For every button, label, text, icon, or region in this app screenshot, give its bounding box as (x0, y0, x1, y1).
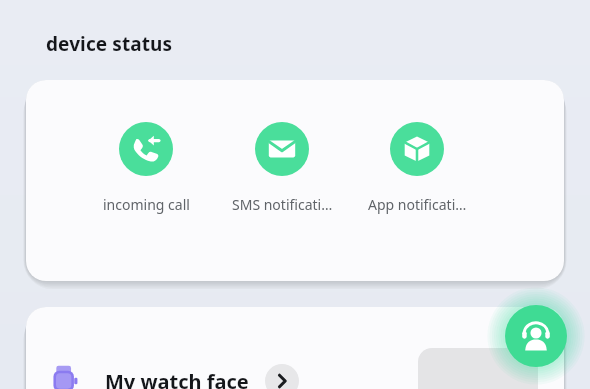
staticText: SMS notificati… (232, 195, 333, 214)
button[interactable]: My watch face (26, 353, 299, 389)
other: Open watch face (265, 364, 299, 389)
staticText: My watch face (105, 368, 249, 389)
button[interactable]: SMS notification (227, 122, 337, 214)
button[interactable]: Contact support (505, 305, 567, 367)
button[interactable]: Incoming call (91, 122, 201, 214)
staticText: App notificati… (368, 195, 467, 214)
staticText: incoming call (103, 195, 190, 214)
staticText: device status (46, 31, 173, 57)
button[interactable]: App notification (362, 122, 472, 214)
